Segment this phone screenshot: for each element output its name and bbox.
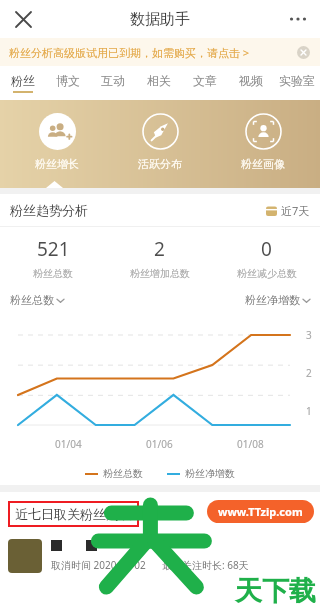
button[interactable]: 粉丝分析高级版试用已到期，如需购买，请点击 > — [0, 38, 320, 66]
button[interactable]: 互动 — [90, 66, 136, 100]
button[interactable]: Close — [9, 5, 37, 33]
staticText: 互动 — [101, 73, 125, 88]
staticText: 视频 — [239, 73, 263, 88]
staticText: 取消时间 2020-01-02 — [51, 558, 146, 572]
staticText: 天下载 — [235, 574, 316, 608]
button[interactable]: Dismiss banner — [293, 42, 313, 62]
staticText: 粉丝净增数 — [185, 467, 235, 480]
button[interactable]: 视频 — [228, 66, 274, 100]
button[interactable]: 粉丝 — [0, 66, 45, 100]
staticText: 3 — [306, 328, 312, 342]
staticText: 实验室 — [279, 73, 315, 88]
staticText: 粉丝总数 — [103, 467, 143, 480]
staticText: 文章 — [193, 73, 217, 88]
button[interactable]: More options — [284, 5, 312, 33]
staticText: 01/04 — [55, 437, 82, 451]
staticText: 相关 — [147, 73, 171, 88]
button[interactable]: 取消时间 2020-01-02 — [8, 534, 320, 578]
button[interactable]: 近七日取关粉丝列表 — [15, 506, 132, 522]
staticText: 活跃分布 — [138, 157, 182, 171]
staticText: 01/06 — [146, 437, 173, 451]
staticText: 0 — [261, 236, 272, 262]
staticText: 博文 — [56, 73, 80, 88]
button[interactable]: 粉丝净增数 — [245, 293, 310, 307]
button[interactable]: 粉丝增长 — [11, 113, 103, 171]
staticText: 粉丝趋势分析 — [10, 202, 88, 218]
staticText: 粉丝总数 — [33, 267, 73, 280]
button[interactable]: 实验室 — [274, 66, 320, 100]
staticText: 2 — [154, 236, 165, 262]
button[interactable]: 粉丝总数 — [10, 293, 64, 307]
staticText: 最近关注时长: 68天 — [162, 558, 249, 572]
staticText: 粉丝减少总数 — [237, 267, 297, 280]
button[interactable]: 0 — [213, 236, 320, 280]
staticText: 2 — [306, 366, 312, 380]
staticText: 粉丝增长 — [35, 157, 79, 171]
button[interactable]: 粉丝总数 — [85, 467, 143, 480]
button[interactable]: 博文 — [45, 66, 90, 100]
staticText: 粉丝总数 — [10, 293, 54, 307]
button[interactable]: 相关 — [136, 66, 182, 100]
staticText: 粉丝 — [11, 73, 35, 88]
button[interactable]: 521 — [0, 236, 106, 280]
staticText: 粉丝画像 — [241, 157, 285, 171]
button[interactable]: 粉丝净增数 — [167, 467, 235, 480]
staticText: 521 — [37, 236, 70, 262]
staticText: www.TTzip.com — [218, 504, 303, 519]
staticText: 粉丝增加总数 — [130, 267, 190, 280]
staticText: 粉丝净增数 — [245, 293, 300, 307]
staticText: 近7天 — [281, 203, 310, 218]
button[interactable]: 粉丝画像 — [217, 113, 309, 171]
staticText: 粉丝分析高级版试用已到期，如需购买，请点击 > — [9, 45, 250, 60]
staticText: 01/08 — [237, 437, 264, 451]
button[interactable]: 活跃分布 — [114, 113, 206, 171]
button[interactable]: 文章 — [182, 66, 228, 100]
staticText: 近七日取关粉丝列表 — [15, 506, 132, 522]
staticText: 1 — [306, 404, 312, 418]
button[interactable]: 近7天 — [266, 203, 310, 218]
button[interactable]: 2 — [106, 236, 213, 280]
staticText: 数据助手 — [130, 10, 190, 29]
